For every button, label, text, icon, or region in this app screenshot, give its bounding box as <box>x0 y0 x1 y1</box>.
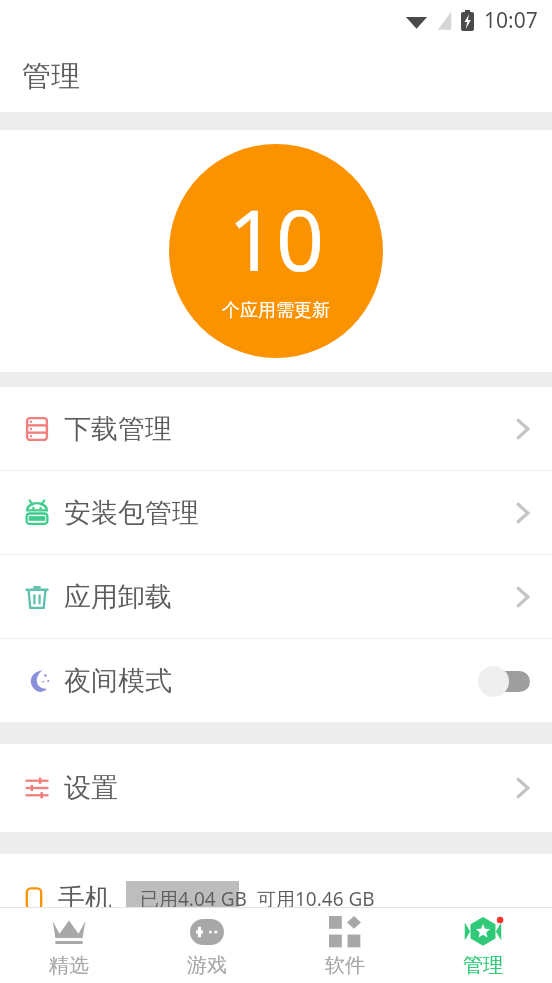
button[interactable]: 软件 <box>276 908 414 983</box>
button[interactable]: 10 <box>169 144 383 358</box>
staticText: 夜间模式 <box>64 664 172 698</box>
staticText: 安装包管理 <box>64 496 199 530</box>
staticText: 管理 <box>463 953 503 978</box>
staticText: 10 <box>228 181 325 295</box>
button[interactable]: 手机 <box>0 854 552 944</box>
button[interactable]: 夜间模式 <box>0 639 552 722</box>
button[interactable]: 精选 <box>0 908 138 983</box>
staticText: 精选 <box>49 953 89 978</box>
button[interactable]: 设置 <box>0 744 552 832</box>
staticText: 游戏 <box>187 953 227 978</box>
staticText: 已用4.04 GB <box>140 886 247 912</box>
button[interactable]: 安装包管理 <box>0 471 552 554</box>
staticText: 软件 <box>325 953 365 978</box>
staticText: 管理 <box>22 58 80 95</box>
staticText: 手机 <box>58 882 112 916</box>
button[interactable]: 游戏 <box>138 908 276 983</box>
button[interactable]: 下载管理 <box>0 387 552 470</box>
staticText: 设置 <box>64 771 118 805</box>
staticText: 个应用需更新 <box>222 299 330 322</box>
staticText: 10:07 <box>484 6 538 35</box>
button[interactable]: 管理 <box>414 908 552 983</box>
button[interactable]: 夜间模式开关 <box>478 664 530 698</box>
staticText: 下载管理 <box>64 412 172 446</box>
staticText: 应用卸载 <box>64 580 172 614</box>
button[interactable]: 应用卸载 <box>0 555 552 638</box>
staticText: 可用10.46 GB <box>257 886 375 912</box>
